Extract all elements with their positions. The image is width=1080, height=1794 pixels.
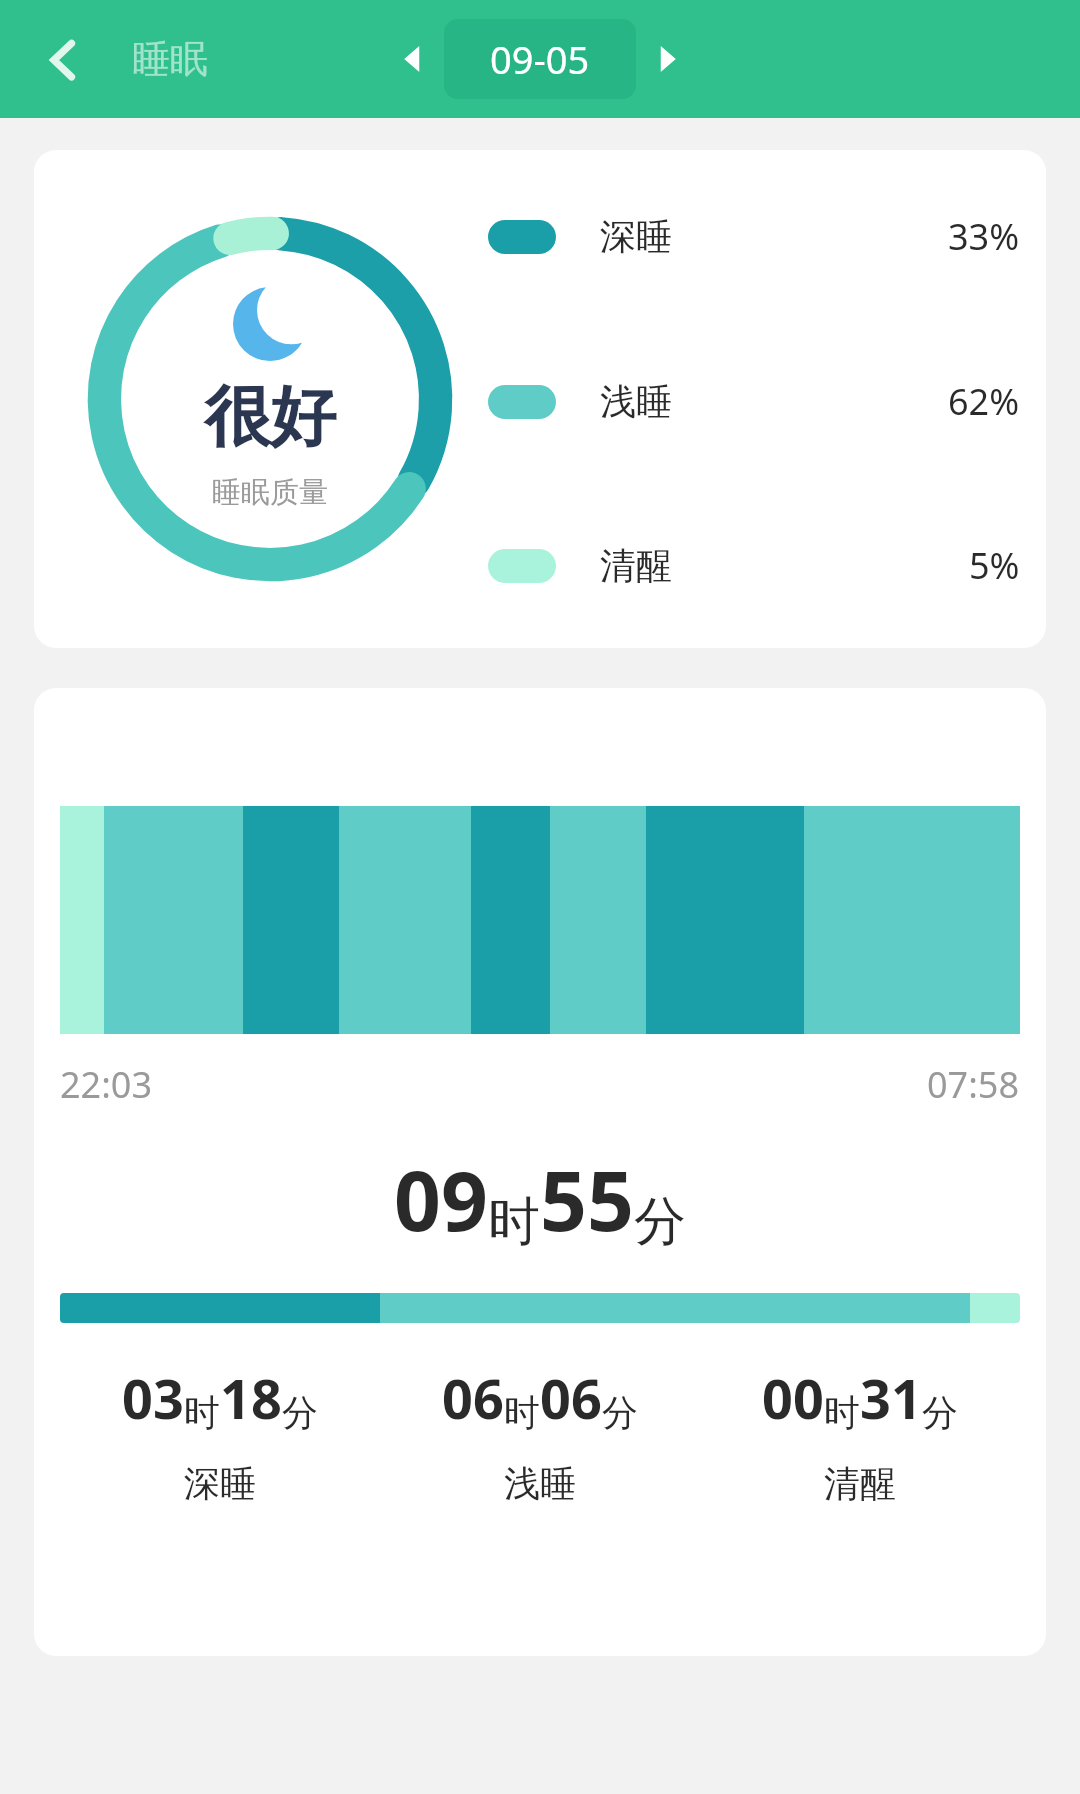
button[interactable]: 09-05 bbox=[444, 19, 636, 99]
button[interactable]: Back bbox=[34, 31, 90, 87]
button[interactable]: 很好 bbox=[34, 150, 1046, 648]
staticText: 浅睡 bbox=[600, 379, 672, 424]
staticText: 睡眠质量 bbox=[212, 474, 328, 511]
button[interactable]: 06 bbox=[380, 1361, 700, 1506]
staticText: 时 bbox=[488, 1189, 540, 1255]
button[interactable]: 22:03 bbox=[34, 688, 1046, 1656]
staticText: 很好 bbox=[204, 375, 336, 458]
staticText: 62% bbox=[948, 377, 1020, 426]
staticText: 5% bbox=[969, 541, 1020, 590]
staticText: 09 bbox=[394, 1143, 488, 1255]
staticText: 06 bbox=[442, 1361, 504, 1435]
staticText: 清醒 bbox=[824, 1461, 896, 1506]
button[interactable]: 清醒 bbox=[488, 541, 1020, 590]
button[interactable]: 深睡 bbox=[488, 212, 1020, 261]
staticText: 分 bbox=[602, 1390, 638, 1435]
staticText: 18 bbox=[220, 1361, 282, 1435]
staticText: 深睡 bbox=[184, 1461, 256, 1506]
staticText: 时 bbox=[504, 1390, 540, 1435]
button[interactable]: Previous day bbox=[390, 37, 434, 81]
staticText: 深睡 bbox=[600, 214, 672, 259]
staticText: 分 bbox=[922, 1390, 958, 1435]
staticText: 时 bbox=[824, 1390, 860, 1435]
staticText: 31 bbox=[860, 1361, 922, 1435]
staticText: 22:03 bbox=[60, 1060, 153, 1109]
staticText: 00 bbox=[762, 1361, 824, 1435]
staticText: 06 bbox=[540, 1361, 602, 1435]
staticText: 33% bbox=[948, 212, 1020, 261]
staticText: 时 bbox=[184, 1390, 220, 1435]
staticText: 55 bbox=[540, 1143, 634, 1255]
button[interactable]: 浅睡 bbox=[488, 377, 1020, 426]
button[interactable]: 03 bbox=[60, 1361, 380, 1506]
staticText: 03 bbox=[122, 1361, 184, 1435]
staticText: 07:58 bbox=[927, 1060, 1020, 1109]
button[interactable]: Next day bbox=[646, 37, 690, 81]
staticText: 浅睡 bbox=[504, 1461, 576, 1506]
staticText: 分 bbox=[282, 1390, 318, 1435]
staticText: 09-05 bbox=[490, 33, 590, 85]
staticText: 睡眠 bbox=[132, 35, 208, 83]
staticText: 分 bbox=[634, 1189, 686, 1255]
button[interactable]: 00 bbox=[700, 1361, 1020, 1506]
staticText: 清醒 bbox=[600, 543, 672, 588]
